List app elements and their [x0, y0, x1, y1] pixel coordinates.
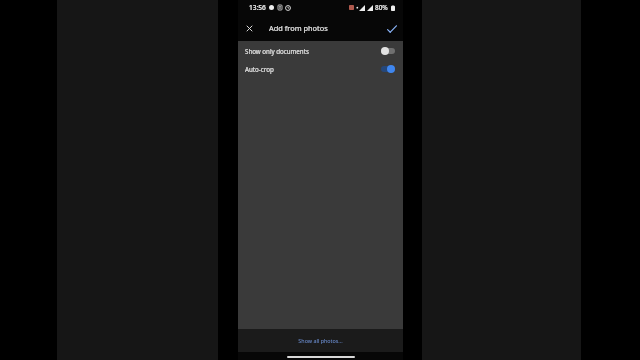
button[interactable]: Done	[383, 20, 399, 36]
staticText: Auto-crop	[245, 65, 381, 73]
button[interactable]: Show all photos...	[238, 329, 403, 352]
staticText: Add from photos	[269, 23, 328, 33]
staticText: Show only documents	[245, 47, 381, 55]
button[interactable]: Auto-crop	[238, 60, 403, 78]
button[interactable]: Toggle Show only documents	[381, 47, 395, 55]
button[interactable]: Show only documents	[238, 42, 403, 60]
staticText: 80%	[375, 3, 388, 12]
staticText: Show all photos...	[298, 337, 343, 344]
staticText: 13:56	[249, 3, 266, 12]
button[interactable]: Toggle Auto-crop	[381, 65, 395, 73]
button[interactable]: Close	[243, 20, 259, 36]
